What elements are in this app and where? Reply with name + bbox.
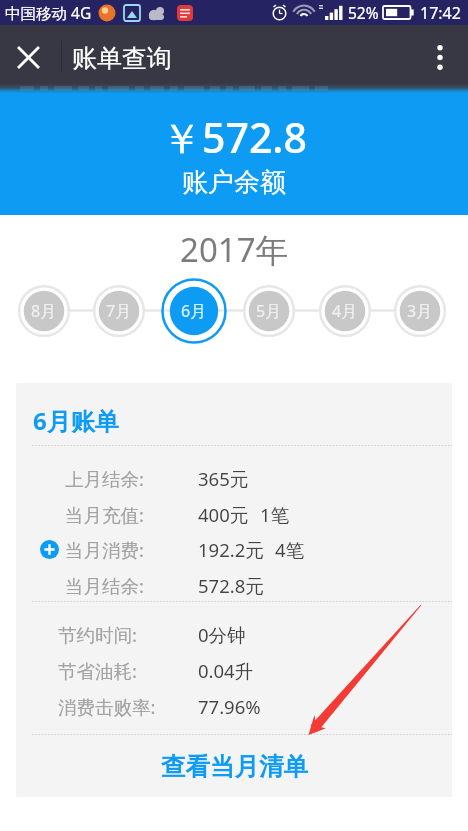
staticText: 账单查询 <box>72 43 172 74</box>
button[interactable]: Close <box>8 37 48 77</box>
staticText: 7月 <box>106 300 132 322</box>
staticText: ￥572.8 <box>161 109 307 165</box>
staticText: 192.2元 <box>198 537 264 562</box>
staticText: 节省油耗: <box>58 658 137 683</box>
staticText: 当月充值: <box>65 502 144 527</box>
button[interactable]: 3月 <box>394 285 446 337</box>
staticText: 当月结余: <box>65 573 144 598</box>
button[interactable]: More options <box>420 37 460 77</box>
staticText: 572.8元 <box>198 573 264 598</box>
staticText: 账户余额 <box>182 166 286 199</box>
button[interactable]: 6月 <box>161 278 227 344</box>
staticText: 3月 <box>407 300 433 322</box>
button[interactable]: 查看当月清单 <box>16 735 452 797</box>
staticText: 上月结余: <box>65 466 144 491</box>
staticText: 节约时间: <box>58 622 137 647</box>
staticText: 当月消费: <box>65 537 144 562</box>
staticText: 0分钟 <box>198 622 246 647</box>
button[interactable]: 4月 <box>319 285 371 337</box>
staticText: 6月账单 <box>33 404 119 437</box>
staticText: 8月 <box>31 300 57 322</box>
staticText: 2017年 <box>180 227 289 272</box>
staticText: 365元 <box>198 466 249 491</box>
button[interactable]: 8月 <box>18 285 70 337</box>
staticText: 400元 <box>198 502 249 527</box>
staticText: 5月 <box>256 300 282 322</box>
staticText: 中国移动 4G <box>5 2 92 23</box>
staticText: 查看当月清单 <box>161 751 308 782</box>
button[interactable]: 7月 <box>93 285 145 337</box>
staticText: 1笔 <box>260 502 290 527</box>
staticText: 消费击败率: <box>58 694 156 719</box>
staticText: 17:42 <box>420 2 461 24</box>
staticText: 6月 <box>181 300 207 322</box>
staticText: 4月 <box>332 300 358 322</box>
button[interactable]: 5月 <box>243 285 295 337</box>
staticText: 77.96% <box>198 694 261 719</box>
staticText: 4笔 <box>275 537 305 562</box>
staticText: 52% <box>348 2 379 23</box>
staticText: 0.04升 <box>198 658 254 683</box>
